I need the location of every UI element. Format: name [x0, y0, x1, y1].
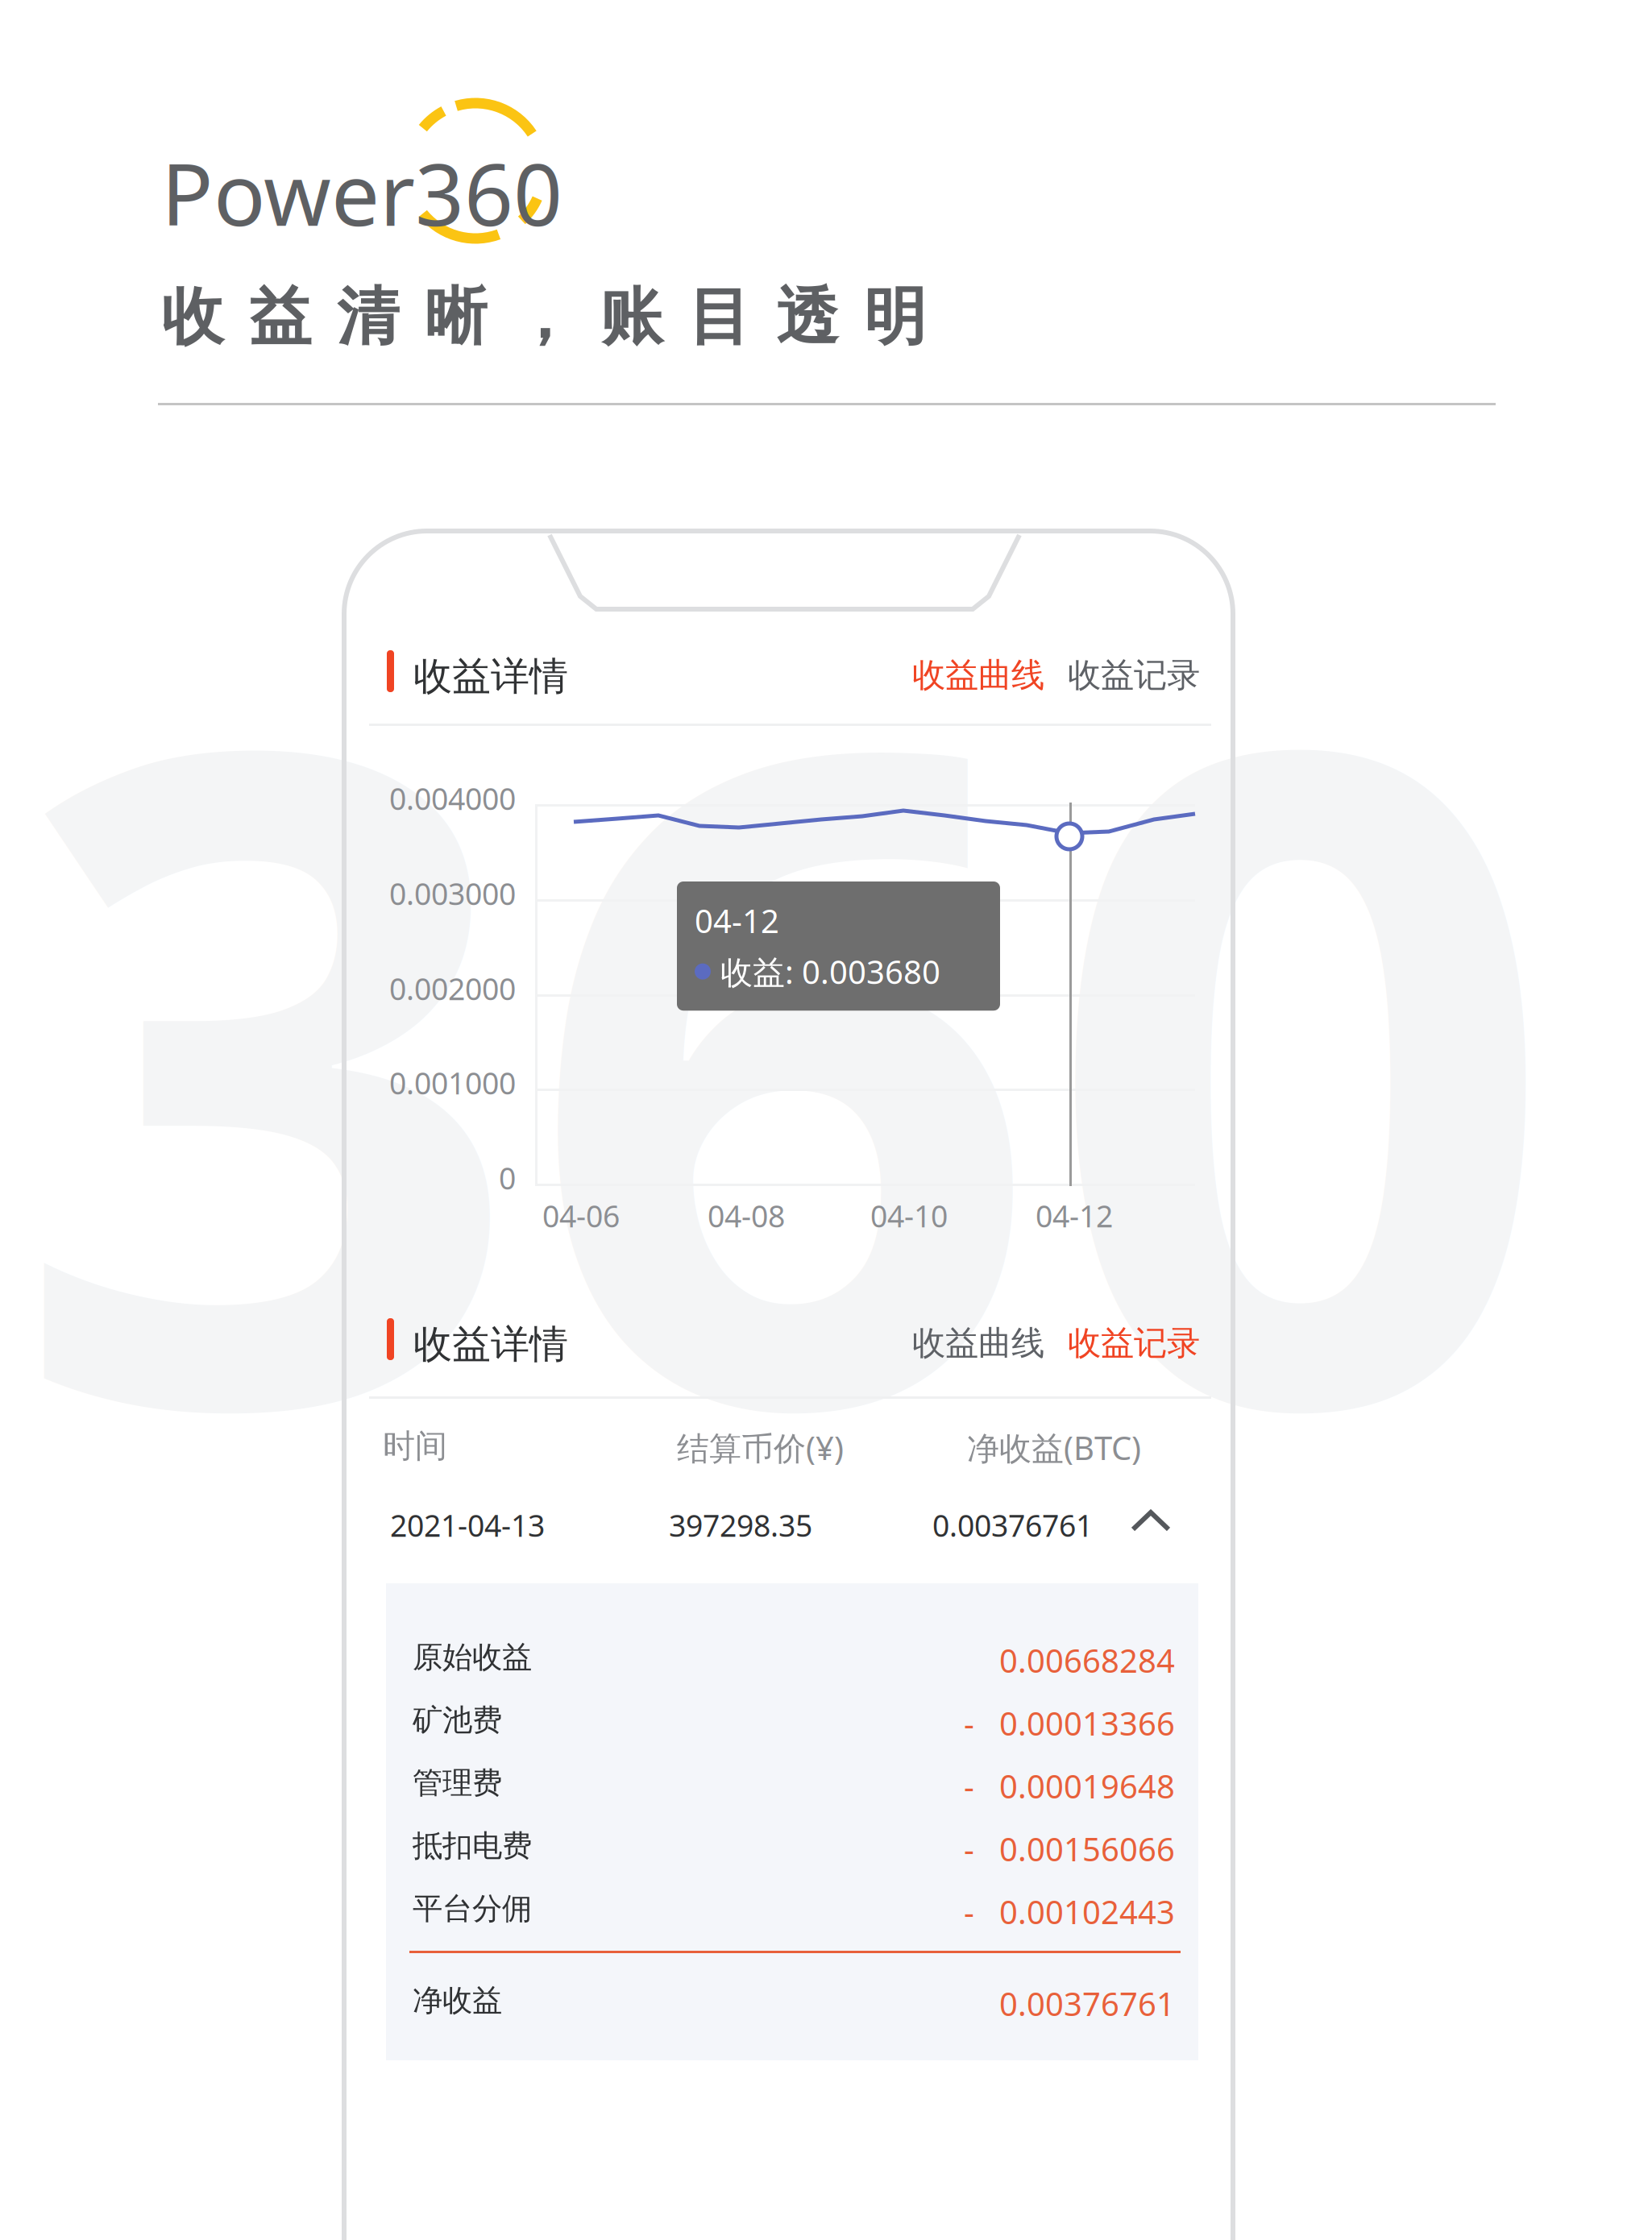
button[interactable]: Collapse earnings breakdown	[1114, 1494, 1188, 1552]
staticText: 收益详情	[413, 1321, 568, 1368]
staticText: 2021-04-13	[390, 1505, 545, 1545]
staticText: 0.001000	[389, 1063, 516, 1103]
staticText: 360	[10, 455, 1559, 1654]
staticText: 0.00156066	[999, 1827, 1175, 1870]
staticText: 收益曲线	[912, 1323, 1044, 1364]
staticText: 收益详情	[413, 653, 568, 700]
staticText: 矿池费	[413, 1702, 502, 1739]
staticText: 收益记录	[1068, 1323, 1200, 1364]
button[interactable]: 收益记录	[1058, 646, 1210, 704]
staticText: 管理费	[413, 1765, 502, 1802]
staticText: 收益记录	[1068, 655, 1200, 696]
staticText: 0.00102443	[999, 1890, 1175, 1933]
staticText: 0.002000	[389, 969, 516, 1008]
staticText: 0	[499, 1158, 516, 1198]
staticText: 收益曲线	[912, 655, 1044, 696]
staticText: 04-06	[542, 1196, 620, 1236]
staticText: -	[964, 1702, 974, 1745]
staticText: 原始收益	[413, 1639, 532, 1676]
staticText: 04-10	[870, 1196, 948, 1236]
staticText: 抵扣电费	[413, 1827, 532, 1864]
button[interactable]: 2021-04-13	[371, 1483, 1209, 2240]
staticText: Power360	[161, 135, 562, 249]
button[interactable]: 收益曲线	[903, 646, 1054, 704]
staticText: 04-12	[1036, 1196, 1113, 1236]
staticText: 0.00376761	[932, 1505, 1093, 1545]
staticText: 0.00376761	[999, 1982, 1175, 2025]
button[interactable]: 收益曲线	[903, 1314, 1054, 1372]
staticText: 净收益(BTC)	[967, 1426, 1141, 1469]
staticText: 平台分佣	[413, 1890, 532, 1927]
staticText: 时间	[383, 1426, 447, 1466]
staticText: -	[964, 1827, 974, 1870]
staticText: 04-12	[695, 899, 779, 942]
staticText: -	[964, 1890, 974, 1933]
staticText: 0.00013366	[999, 1702, 1175, 1745]
staticText: 收益清晰，账目透明	[161, 279, 926, 355]
button[interactable]: 收益记录	[1058, 1314, 1210, 1372]
staticText: 04-08	[708, 1196, 785, 1236]
staticText: 0.00019648	[999, 1765, 1175, 1807]
staticText: 397298.35	[669, 1505, 812, 1545]
staticText: 净收益	[413, 1982, 502, 2019]
staticText: 结算币价(¥)	[677, 1426, 844, 1469]
staticText: -	[964, 1765, 974, 1807]
staticText: 0.004000	[389, 778, 516, 818]
staticText: 收益: 0.003680	[720, 950, 940, 993]
staticText: 0.003000	[389, 873, 516, 913]
staticText: 0.00668284	[999, 1639, 1175, 1682]
